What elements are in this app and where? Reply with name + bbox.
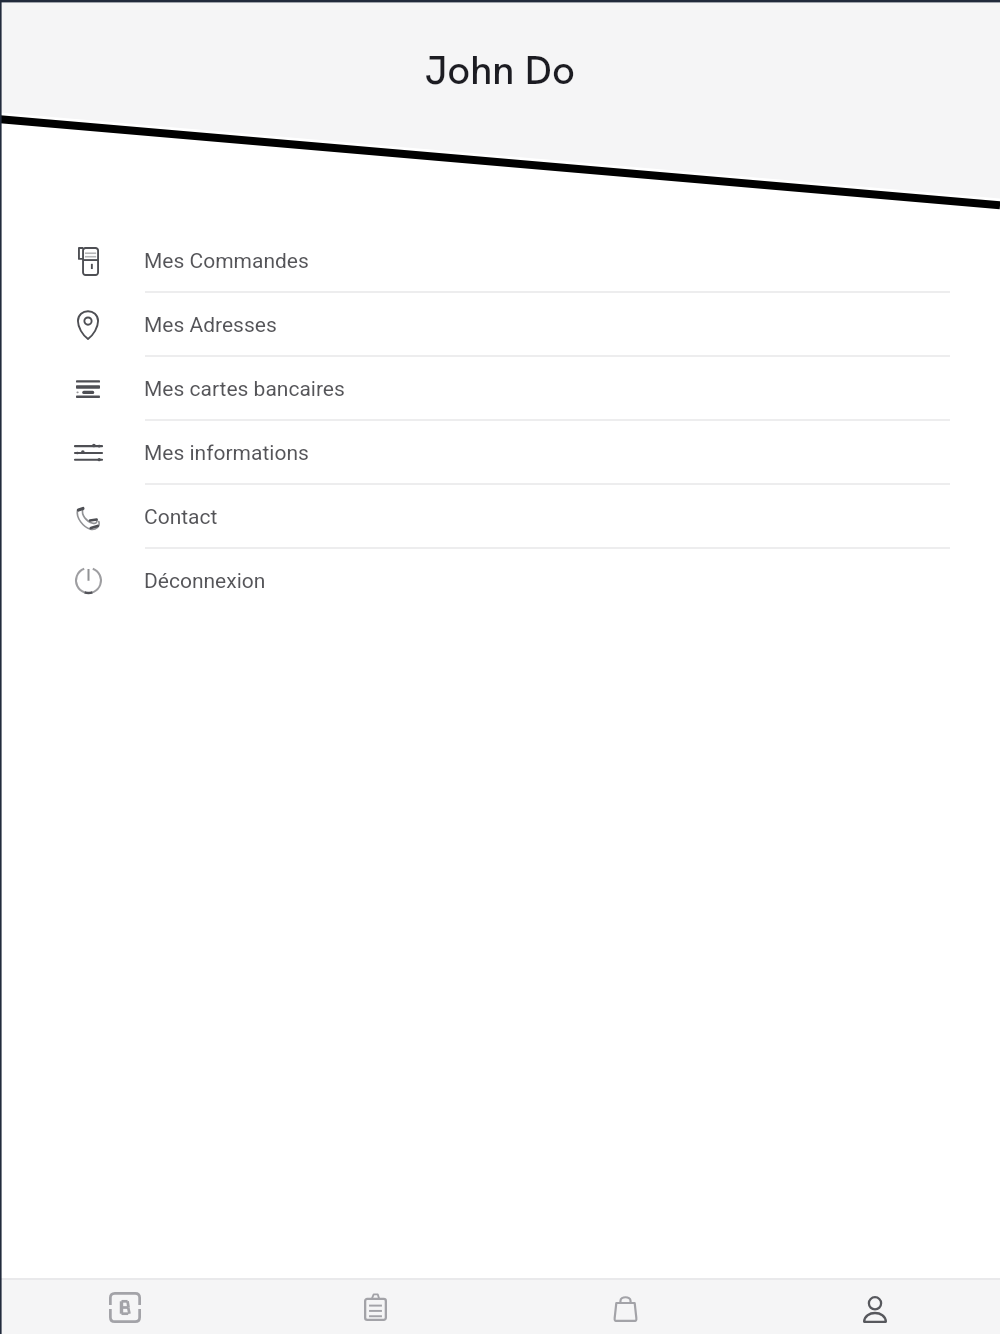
staticText: Mes Adresses bbox=[144, 313, 277, 338]
staticText: Mes informations bbox=[144, 441, 309, 466]
button[interactable]: Scanner bbox=[0, 1280, 250, 1334]
button[interactable]: Mon compte bbox=[750, 1280, 1000, 1334]
button[interactable]: Contact bbox=[0, 485, 1000, 549]
button[interactable]: Déconnexion bbox=[0, 549, 1000, 613]
staticText: Mes cartes bancaires bbox=[144, 377, 345, 402]
button[interactable]: Mes Commandes bbox=[0, 229, 1000, 293]
staticText: Déconnexion bbox=[144, 569, 266, 594]
button[interactable]: Mes Adresses bbox=[0, 293, 1000, 357]
staticText: John Do bbox=[0, 44, 1000, 96]
button[interactable]: Boutique bbox=[500, 1280, 750, 1334]
button[interactable]: Mes cartes bancaires bbox=[0, 357, 1000, 421]
staticText: Mes Commandes bbox=[144, 249, 309, 274]
staticText: Contact bbox=[144, 505, 218, 530]
button[interactable]: Mes informations bbox=[0, 421, 1000, 485]
button[interactable]: Mes listes bbox=[250, 1280, 500, 1334]
